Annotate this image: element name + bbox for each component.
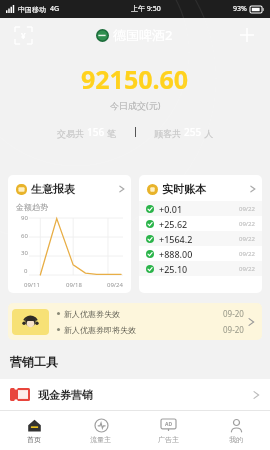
staticText: 新人优惠券即将失效 <box>64 325 136 335</box>
button[interactable]: +25.10 <box>146 261 255 276</box>
staticText: 09/22 <box>239 220 255 228</box>
staticText: 09/22 <box>239 265 255 273</box>
staticText: 营销工具 <box>10 354 58 369</box>
button[interactable]: 新人优惠券失效 <box>8 303 262 340</box>
staticText: 今日成交(元) <box>110 99 161 111</box>
staticText: 30 <box>21 249 28 257</box>
staticText: +25.10 <box>159 263 188 275</box>
staticText: 广告主 <box>158 435 179 444</box>
button[interactable]: 实时账本 <box>139 175 262 293</box>
staticText: 09/22 <box>239 235 255 243</box>
staticText: ¥ <box>21 30 26 41</box>
button[interactable]: 交易共 <box>57 125 117 139</box>
staticText: 实时账本 <box>162 182 206 196</box>
staticText: 09/18 <box>66 281 82 289</box>
staticText: 09-20 <box>223 324 244 335</box>
button[interactable]: 生意报表 <box>8 175 131 293</box>
staticText: 90 <box>21 214 28 222</box>
staticText: 4G <box>50 4 60 14</box>
staticText: 顾客共 <box>154 127 184 139</box>
staticText: 人 <box>202 127 214 139</box>
staticText: 现金券营销 <box>38 388 93 401</box>
button[interactable]: +25.62 <box>146 216 255 231</box>
staticText: +0.01 <box>159 203 183 215</box>
staticText: 92150.60 <box>81 62 189 96</box>
button[interactable]: +888.00 <box>146 246 255 261</box>
staticText: 首页 <box>27 435 41 444</box>
staticText: 0 <box>24 267 28 275</box>
staticText: 上午 9:50 <box>131 4 161 14</box>
staticText: 生意报表 <box>31 182 75 196</box>
button[interactable]: 我的 <box>202 410 270 450</box>
staticText: 德国啤酒2 <box>113 26 173 44</box>
staticText: 255 <box>184 125 202 139</box>
staticText: 09/22 <box>239 205 255 213</box>
staticText: 09-20 <box>223 308 244 319</box>
staticText: 156 <box>87 125 105 139</box>
staticText: 中国移动 <box>18 5 46 14</box>
button[interactable]: +1564.2 <box>146 231 255 246</box>
staticText: 流量主 <box>90 435 111 444</box>
staticText: AD <box>165 421 173 428</box>
staticText: 我的 <box>229 435 243 444</box>
button[interactable]: 现金券营销 <box>0 379 270 410</box>
staticText: +1564.2 <box>159 233 193 245</box>
staticText: 09/22 <box>239 250 255 258</box>
staticText: +25.62 <box>159 218 188 230</box>
button[interactable]: 流量主 <box>67 410 134 450</box>
staticText: 新人优惠券失效 <box>64 309 120 319</box>
button[interactable]: 首页 <box>0 410 67 450</box>
button[interactable]: 德国啤酒2 <box>96 26 173 44</box>
button[interactable]: Scan to collect money <box>10 22 36 48</box>
staticText: 09/24 <box>107 281 123 289</box>
staticText: 60 <box>21 232 28 240</box>
button[interactable]: +0.01 <box>146 201 255 216</box>
staticText: 93% <box>233 4 247 14</box>
button[interactable]: 顾客共 <box>154 125 214 139</box>
staticText: +888.00 <box>159 248 193 260</box>
staticText: 交易共 <box>57 127 87 139</box>
staticText: 金额趋势 <box>16 202 48 212</box>
staticText: 笔 <box>105 127 117 139</box>
button[interactable]: AD <box>134 410 202 450</box>
staticText: 09/11 <box>24 281 40 289</box>
